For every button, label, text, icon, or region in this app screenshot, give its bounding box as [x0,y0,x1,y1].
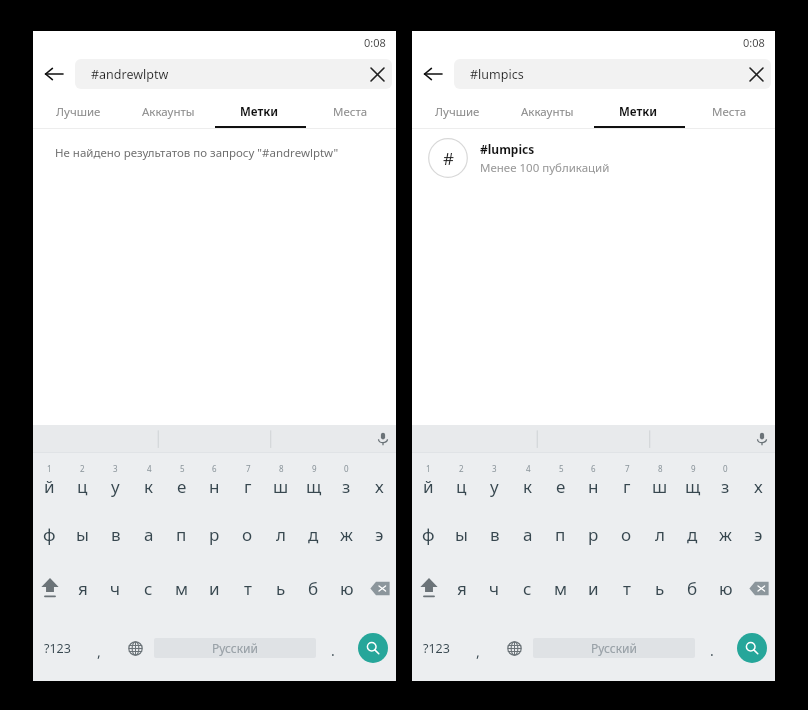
button[interactable]: Shift [33,561,66,615]
button[interactable]: и [198,561,231,615]
button[interactable]: б [676,561,709,615]
button[interactable]: я [66,561,99,615]
button[interactable]: э [363,507,396,561]
button[interactable]: р [198,507,231,561]
button[interactable]: Места [305,95,396,128]
button[interactable]: 6 [198,453,231,507]
button[interactable]: Аккаунты [502,95,593,128]
button[interactable]: э [742,507,775,561]
button[interactable]: #andrewlptw [75,59,392,89]
button[interactable]: ж [330,507,363,561]
button[interactable]: 9 [297,453,330,507]
button[interactable]: Back [412,53,454,95]
button[interactable]: Лучшие [33,95,123,128]
button[interactable]: 0 [709,453,742,507]
button[interactable]: м [165,561,198,615]
button[interactable]: Voice input [369,425,396,452]
button[interactable]: ю [330,561,363,615]
button[interactable]: ч [99,561,132,615]
button[interactable]: 3 [478,453,511,507]
button[interactable]: 1 [412,453,445,507]
button[interactable]: . [695,615,729,681]
button[interactable]: ж [709,507,742,561]
button[interactable]: ь [264,561,297,615]
staticText: # [443,147,454,170]
staticText: ц [77,475,88,498]
button[interactable]: ?123 [33,615,81,681]
button[interactable]: 5 [165,453,198,507]
button[interactable]: Shift [412,561,445,615]
button[interactable]: т [610,561,643,615]
button[interactable]: 7 [231,453,264,507]
button[interactable]: х [363,453,396,507]
button[interactable]: я [445,561,478,615]
button[interactable]: 1 [33,453,66,507]
button[interactable]: а [511,507,544,561]
button[interactable]: Clear [362,59,392,89]
button[interactable]: с [132,561,165,615]
button[interactable]: Change language [495,615,533,681]
button[interactable]: 4 [132,453,165,507]
button[interactable]: д [297,507,330,561]
button[interactable]: #lumpics [454,59,771,89]
button[interactable]: л [264,507,297,561]
button[interactable]: л [643,507,676,561]
button[interactable]: о [231,507,264,561]
button[interactable]: Search [729,615,775,681]
button[interactable]: Русский [533,638,695,658]
button[interactable]: # [412,129,775,187]
button[interactable]: ф [33,507,66,561]
button[interactable]: 8 [643,453,676,507]
button[interactable]: . [316,615,350,681]
staticText: ю [340,577,354,600]
button[interactable]: Change language [116,615,154,681]
button[interactable]: 8 [264,453,297,507]
button[interactable]: 2 [66,453,99,507]
button[interactable]: ф [412,507,445,561]
button[interactable]: Русский [154,638,316,658]
button[interactable]: 4 [511,453,544,507]
button[interactable]: ю [709,561,742,615]
button[interactable]: п [544,507,577,561]
button[interactable]: 9 [676,453,709,507]
button[interactable]: д [676,507,709,561]
button[interactable]: Search [350,615,396,681]
button[interactable]: х [742,453,775,507]
button[interactable]: Лучшие [412,95,502,128]
button[interactable]: о [610,507,643,561]
button[interactable]: Аккаунты [123,95,214,128]
button[interactable]: Места [684,95,775,128]
button[interactable]: ы [445,507,478,561]
button[interactable]: р [577,507,610,561]
button[interactable]: б [297,561,330,615]
staticText: с [144,577,153,600]
button[interactable]: , [460,615,495,681]
button[interactable]: ?123 [412,615,460,681]
button[interactable]: ы [66,507,99,561]
button[interactable]: Backspace [363,561,396,615]
button[interactable]: с [511,561,544,615]
button[interactable]: п [165,507,198,561]
staticText: п [555,523,566,546]
button[interactable]: 5 [544,453,577,507]
button[interactable]: 0 [330,453,363,507]
button[interactable]: 6 [577,453,610,507]
button[interactable]: Clear [741,59,771,89]
button[interactable]: а [132,507,165,561]
button[interactable]: Метки [593,95,684,128]
button[interactable]: в [99,507,132,561]
button[interactable]: Back [33,53,75,95]
button[interactable]: в [478,507,511,561]
button[interactable]: ч [478,561,511,615]
button[interactable]: ь [643,561,676,615]
button[interactable]: Backspace [742,561,775,615]
button[interactable]: Voice input [748,425,775,452]
button[interactable]: 7 [610,453,643,507]
button[interactable]: Метки [214,95,305,128]
button[interactable]: 2 [445,453,478,507]
button[interactable]: т [231,561,264,615]
button[interactable]: м [544,561,577,615]
button[interactable]: 3 [99,453,132,507]
button[interactable]: , [81,615,116,681]
button[interactable]: и [577,561,610,615]
